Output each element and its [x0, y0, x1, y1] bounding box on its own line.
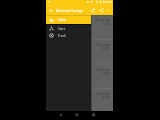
button[interactable]: Back	[57, 111, 65, 119]
staticText: 07:55	[46, 96, 110, 100]
button[interactable]: Stars	[46, 25, 91, 32]
button[interactable]: Home	[73, 111, 81, 119]
staticText: Trash	[58, 34, 66, 38]
staticText: Material Design	[56, 8, 84, 13]
staticText: 09:41	[46, 47, 110, 51]
staticText: 18:27	[46, 72, 110, 76]
staticText: Thursday	[46, 43, 110, 47]
button[interactable]: Thursday	[46, 39, 113, 64]
staticText: 14:02	[46, 22, 110, 26]
button[interactable]: Trash	[46, 32, 91, 39]
button[interactable]: More options	[103, 5, 113, 15]
staticText: Saturday	[46, 92, 110, 96]
staticText: Stars	[58, 27, 66, 31]
staticText: Yesterday	[46, 18, 110, 22]
button[interactable]: Refresh	[88, 5, 98, 15]
staticText: Inbox	[58, 18, 67, 22]
button[interactable]: Back	[47, 5, 56, 15]
button[interactable]: Recent apps	[90, 111, 98, 119]
button[interactable]: Yesterday	[46, 15, 113, 39]
button[interactable]: Inbox	[46, 15, 91, 25]
button[interactable]: Saturday	[46, 88, 113, 111]
button[interactable]: Thursday	[46, 64, 113, 89]
staticText: Thursday	[46, 68, 110, 72]
button[interactable]: Share	[96, 5, 106, 15]
